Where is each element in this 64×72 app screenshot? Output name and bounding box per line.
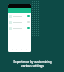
button[interactable] bbox=[9, 14, 30, 18]
button[interactable] bbox=[9, 26, 30, 30]
staticText: various settings bbox=[21, 64, 44, 68]
staticText: Experience by customizing bbox=[13, 60, 52, 64]
button[interactable] bbox=[9, 20, 30, 24]
